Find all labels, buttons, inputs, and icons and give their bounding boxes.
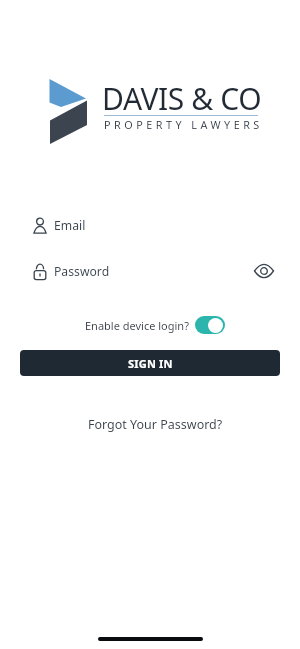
button[interactable]: Password [20, 256, 280, 286]
button[interactable]: Enable device login? [5, 312, 300, 338]
staticText: Email [54, 217, 86, 234]
staticText: PROPERTY LAWYERS [104, 117, 263, 132]
staticText: Enable device login? [85, 318, 189, 333]
staticText: DAVIS & CO [102, 78, 262, 119]
staticText: SIGN IN [128, 356, 173, 371]
staticText: Password [54, 263, 110, 280]
button[interactable]: Forgot Your Password? [88, 416, 223, 433]
button[interactable]: SIGN IN [20, 350, 280, 376]
button[interactable]: Email [20, 210, 280, 240]
